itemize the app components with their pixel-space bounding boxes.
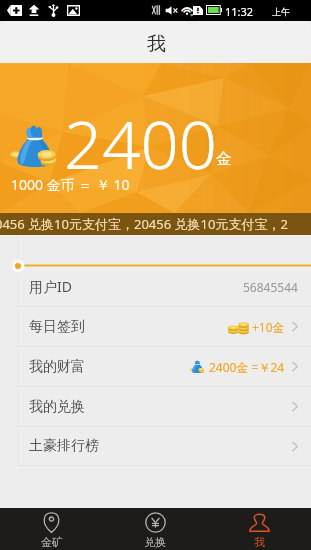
staticText: 2400金 =￥24 [209, 359, 285, 375]
button[interactable]: 用户ID [18, 267, 311, 306]
button[interactable]: 我 [207, 508, 311, 550]
staticText: 上午 [272, 6, 290, 17]
button[interactable]: 土豪排行榜 [18, 427, 311, 465]
staticText: 每日签到 [29, 318, 85, 336]
staticText: 1000 金币 ＝ ￥ 10 [11, 175, 130, 194]
staticText: 我 [254, 535, 265, 549]
button[interactable]: 每日签到 [18, 307, 311, 346]
staticText: 2400 [64, 97, 218, 188]
button[interactable]: 我的财富 [18, 347, 311, 386]
staticText: 56845544 [243, 279, 298, 295]
button[interactable]: 金矿 [0, 508, 103, 550]
staticText: 11:32 [225, 4, 254, 19]
staticText: +10金 [252, 319, 285, 335]
staticText: 我的财富 [29, 358, 85, 376]
staticText: 0456 兑换10元支付宝，20456 兑换10元支付宝，2 [0, 215, 288, 233]
staticText: 金矿 [41, 535, 63, 549]
staticText: 我的兑换 [29, 398, 85, 416]
staticText: 金 [216, 149, 232, 169]
staticText: 我 [147, 32, 166, 56]
button[interactable]: 兑换 [103, 508, 207, 550]
staticText: 土豪排行榜 [29, 437, 99, 455]
staticText: 用户ID [29, 277, 72, 296]
button[interactable]: 我的兑换 [18, 387, 311, 426]
staticText: 兑换 [144, 535, 166, 549]
